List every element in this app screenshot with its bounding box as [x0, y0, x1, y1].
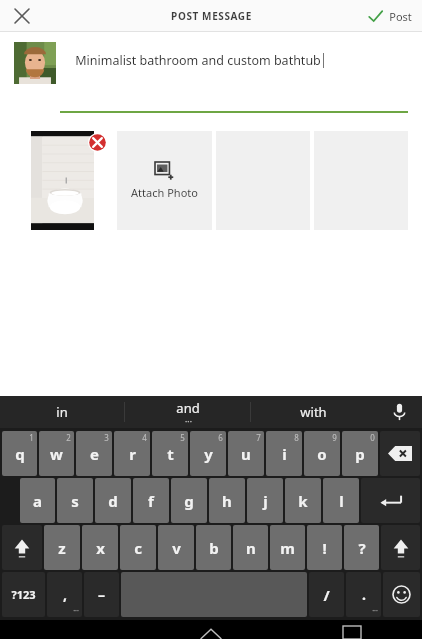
staticText: 9 [332, 432, 337, 443]
button[interactable]: n [233, 525, 268, 570]
staticText: w [50, 444, 63, 464]
button[interactable]: g [171, 478, 207, 523]
staticText: s [71, 491, 79, 511]
button[interactable]: ?123 [2, 572, 45, 617]
staticText: with [300, 403, 327, 421]
staticText: 8 [294, 432, 299, 443]
button[interactable]: Close [0, 0, 44, 32]
staticText: q [15, 444, 25, 464]
staticText: in [56, 403, 68, 421]
staticText: c [134, 538, 142, 558]
staticText: 1 [29, 432, 34, 443]
button[interactable]: y [190, 431, 226, 476]
staticText: k [298, 491, 308, 511]
button[interactable]: ? [344, 525, 379, 570]
button[interactable]: i [266, 431, 302, 476]
button[interactable]: Attach Photo [117, 131, 212, 230]
button[interactable]: Shift [2, 525, 42, 570]
staticText: m [280, 538, 295, 558]
button[interactable]: , [47, 572, 82, 617]
button[interactable]: f [133, 478, 169, 523]
staticText: ? [358, 538, 366, 558]
staticText: h [222, 491, 232, 511]
staticText: a [33, 491, 42, 511]
button[interactable]: k [285, 478, 321, 523]
button[interactable]: t [152, 431, 188, 476]
staticText: j [263, 491, 268, 511]
button[interactable]: Voice input [376, 396, 422, 428]
button[interactable]: / [309, 572, 344, 617]
staticText: z [58, 538, 66, 558]
staticText: l [339, 491, 344, 511]
button[interactable]: with [251, 396, 376, 428]
button[interactable]: Backspace [380, 431, 420, 476]
staticText: 0 [370, 432, 375, 443]
button[interactable]: x [82, 525, 118, 570]
staticText: u [241, 444, 251, 464]
staticText: f [148, 491, 154, 511]
button[interactable]: c [120, 525, 156, 570]
staticText: / [323, 585, 330, 605]
button[interactable]: q [2, 431, 37, 476]
button[interactable]: h [209, 478, 245, 523]
button[interactable]: s [57, 478, 93, 523]
staticText: . [362, 585, 366, 604]
button[interactable]: Enter [361, 478, 420, 523]
button[interactable]: b [196, 525, 231, 570]
staticText: 4 [142, 432, 147, 443]
staticText: ! [322, 538, 327, 558]
staticText: 3 [104, 432, 109, 443]
button[interactable]: a [20, 478, 55, 523]
button[interactable]: Emoji [383, 572, 420, 617]
button[interactable]: z [44, 525, 80, 570]
staticText: ••• [73, 608, 79, 615]
button[interactable]: . [346, 572, 381, 617]
staticText: Minimalist bathroom and custom bathtub [75, 52, 321, 69]
button[interactable]: v [158, 525, 194, 570]
button[interactable]: j [247, 478, 283, 523]
button[interactable]: Post [368, 0, 412, 32]
staticText: t [167, 444, 174, 464]
button[interactable]: and [125, 396, 250, 428]
button[interactable]: in [0, 396, 124, 428]
staticText: 7 [256, 432, 261, 443]
staticText: e [90, 444, 99, 464]
staticText: d [108, 491, 118, 511]
button[interactable]: e [76, 431, 112, 476]
button[interactable]: r [114, 431, 150, 476]
button[interactable]: d [95, 478, 131, 523]
staticText: ••• [185, 418, 192, 426]
button[interactable]: p [342, 431, 378, 476]
button[interactable]: Recents [281, 620, 422, 639]
staticText: Post [389, 9, 412, 24]
staticText: , [63, 585, 67, 604]
button[interactable]: ! [307, 525, 342, 570]
button[interactable]: Remove photo [88, 133, 107, 152]
staticText: and [176, 399, 200, 417]
staticText: ?123 [11, 587, 36, 602]
button[interactable]: – [84, 572, 119, 617]
staticText: b [209, 538, 219, 558]
button[interactable]: Shift [381, 525, 420, 570]
button[interactable]: w [39, 431, 74, 476]
button[interactable]: Home [140, 620, 281, 639]
staticText: 5 [180, 432, 185, 443]
staticText: g [184, 491, 194, 511]
staticText: n [246, 538, 256, 558]
button[interactable]: o [304, 431, 340, 476]
staticText: r [129, 444, 136, 464]
staticText: 2 [66, 432, 71, 443]
staticText: o [317, 444, 327, 464]
button[interactable]: u [228, 431, 264, 476]
button[interactable] [31, 131, 94, 230]
staticText: POST MESSAGE [171, 9, 252, 23]
staticText: – [98, 585, 105, 604]
button[interactable]: l [323, 478, 359, 523]
staticText: p [355, 444, 365, 464]
button[interactable]: m [270, 525, 305, 570]
staticText: x [96, 538, 105, 558]
